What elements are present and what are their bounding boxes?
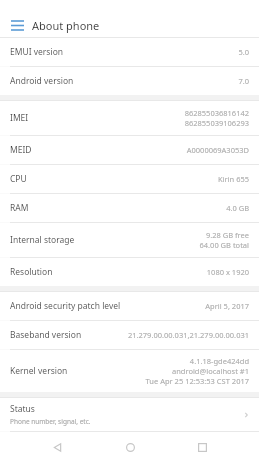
button[interactable]: Android security patch level: [0, 292, 259, 320]
staticText: Android security patch level: [10, 300, 121, 312]
button[interactable]: MEID: [0, 136, 259, 164]
staticText: IMEI: [10, 112, 29, 124]
staticText: April 5, 2017: [205, 301, 249, 311]
button[interactable]: Android version: [0, 67, 259, 95]
staticText: Phone number, signal, etc.: [10, 417, 91, 426]
button[interactable]: RAM: [0, 194, 259, 222]
staticText: EMUI version: [10, 46, 64, 58]
button[interactable]: Internal storage: [0, 223, 259, 257]
staticText: Status: [10, 403, 35, 415]
button[interactable]: Resolution: [0, 258, 259, 286]
staticText: 1080 x 1920: [206, 267, 249, 277]
staticText: Resolution: [10, 266, 53, 278]
button[interactable]: Back: [42, 434, 72, 460]
staticText: CPU: [10, 173, 27, 185]
button[interactable]: Recents: [187, 434, 217, 460]
staticText: 862855036816142: [184, 108, 249, 118]
staticText: 4.1.18-gde424dd: [189, 356, 249, 366]
button[interactable]: EMUI version: [0, 38, 259, 66]
staticText: Kirin 655: [217, 174, 249, 184]
button[interactable]: Baseband version: [0, 321, 259, 349]
staticText: Baseband version: [10, 329, 82, 341]
button[interactable]: CPU: [0, 165, 259, 193]
button[interactable]: IMEI: [0, 101, 259, 135]
button[interactable]: Status: [0, 398, 259, 431]
button[interactable]: Menu: [6, 14, 28, 36]
staticText: RAM: [10, 202, 29, 214]
staticText: Android version: [10, 75, 74, 87]
staticText: 64.00 GB total: [199, 240, 249, 250]
staticText: MEID: [10, 144, 32, 156]
staticText: Kernel version: [10, 365, 68, 377]
staticText: Tue Apr 25 12:53:53 CST 2017: [145, 376, 249, 386]
staticText: Internal storage: [10, 234, 75, 246]
staticText: 21.279.00.00.031,21.279.00.00.031: [127, 330, 249, 340]
staticText: 862855039106293: [184, 118, 249, 128]
staticText: 5.0: [238, 47, 249, 57]
staticText: android@localhost #1: [171, 366, 249, 376]
button[interactable]: Kernel version: [0, 350, 259, 392]
staticText: 4.0 GB: [226, 203, 249, 213]
staticText: About phone: [32, 18, 100, 33]
staticText: A0000069A3053D: [186, 145, 249, 155]
staticText: 7.0: [238, 76, 249, 86]
button[interactable]: Home: [115, 434, 145, 460]
staticText: 9.28 GB free: [205, 230, 249, 240]
